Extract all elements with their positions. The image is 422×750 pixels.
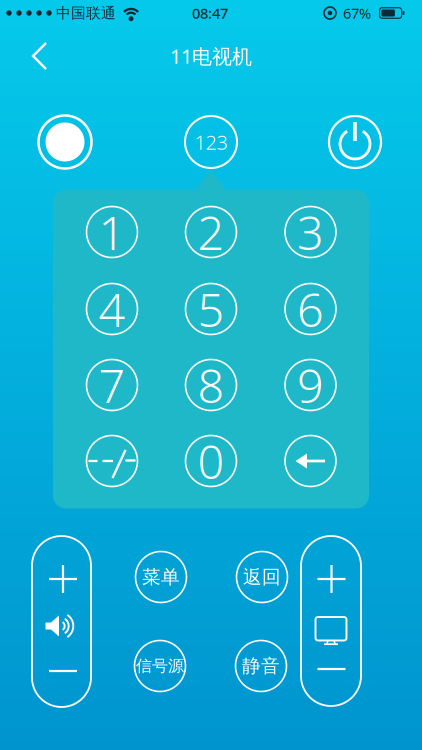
button[interactable]: 6 xyxy=(285,283,336,334)
button[interactable]: 7 xyxy=(86,359,137,410)
staticText: 中国联通 xyxy=(56,4,116,22)
staticText: 静音 xyxy=(242,654,280,677)
button[interactable]: 0 xyxy=(185,435,236,486)
button[interactable]: 4 xyxy=(86,283,137,334)
staticText: 9 xyxy=(297,354,324,416)
staticText: 8 xyxy=(197,354,224,416)
button[interactable]: Number pad xyxy=(185,116,237,168)
button[interactable]: 9 xyxy=(285,359,336,410)
staticText: 11电视机 xyxy=(170,43,252,69)
button[interactable]: 信号源 xyxy=(134,640,185,691)
button[interactable]: 菜单 xyxy=(135,551,186,602)
staticText: 7 xyxy=(98,354,125,416)
button[interactable]: 返回 xyxy=(236,551,287,602)
staticText: 2 xyxy=(197,201,224,263)
staticText: 08:47 xyxy=(192,3,228,23)
staticText: 4 xyxy=(98,278,125,340)
staticText: 返回 xyxy=(243,565,281,588)
button[interactable]: 3 xyxy=(285,206,336,257)
button[interactable]: 2 xyxy=(185,206,236,257)
button[interactable]: Record xyxy=(38,115,91,168)
button[interactable]: Dash xyxy=(86,435,137,486)
button[interactable]: 5 xyxy=(185,283,236,334)
staticText: 3 xyxy=(297,201,324,263)
staticText: 1 xyxy=(98,201,125,263)
staticText: 0 xyxy=(197,430,224,492)
button[interactable]: 8 xyxy=(185,359,236,410)
staticText: 6 xyxy=(297,278,324,340)
button[interactable]: Channel xyxy=(301,536,361,706)
staticText: 123 xyxy=(194,129,227,155)
button[interactable]: Power xyxy=(329,116,381,168)
button[interactable]: Back xyxy=(18,34,62,78)
staticText: 67% xyxy=(343,3,371,23)
staticText: 菜单 xyxy=(142,565,180,588)
button[interactable]: Volume xyxy=(32,536,91,707)
button[interactable]: 1 xyxy=(86,206,137,257)
button[interactable]: 静音 xyxy=(235,640,286,691)
staticText: 信号源 xyxy=(136,656,184,676)
staticText: 5 xyxy=(197,278,224,340)
button[interactable]: Delete xyxy=(285,435,336,486)
